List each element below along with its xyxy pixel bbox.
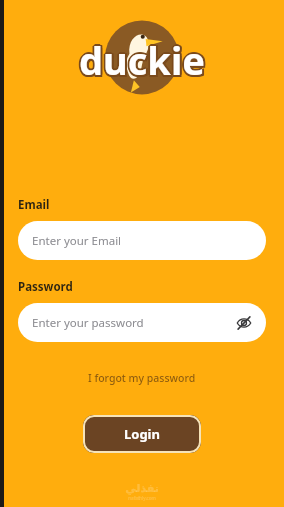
staticText: duckie: [78, 33, 204, 85]
staticText: Enter your Email: [32, 233, 256, 249]
staticText: nafathly.com: [128, 495, 156, 501]
button[interactable]: I forgot my password: [80, 368, 204, 388]
staticText: duckie: [81, 33, 207, 85]
button[interactable]: Login: [83, 415, 201, 453]
button[interactable]: Enter your password: [18, 303, 266, 342]
staticText: duckie: [79, 36, 205, 88]
button[interactable]: Show password: [232, 311, 256, 335]
staticText: نفذلي: [125, 482, 159, 495]
staticText: Enter your password: [32, 315, 232, 331]
staticText: Password: [18, 279, 73, 295]
staticText: Email: [18, 197, 50, 213]
staticText: duckie: [77, 34, 203, 86]
staticText: duckie: [79, 32, 205, 84]
staticText: duckie: [81, 34, 207, 86]
staticText: Login: [124, 425, 160, 443]
staticText: duckie: [78, 36, 204, 88]
staticText: duckie: [81, 36, 207, 88]
staticText: duckie: [79, 34, 205, 86]
button[interactable]: Enter your Email: [18, 221, 266, 260]
staticText: I forgot my password: [88, 371, 196, 385]
